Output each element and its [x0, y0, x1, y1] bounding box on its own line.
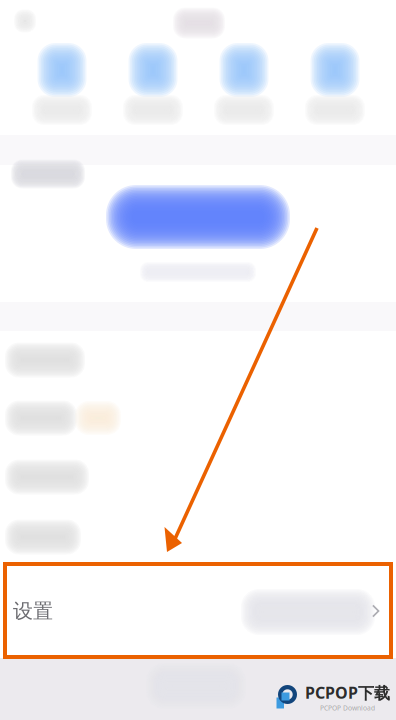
- button[interactable]: [106, 185, 290, 249]
- button[interactable]: [0, 448, 396, 506]
- staticText: PCPOP Download: [320, 703, 375, 712]
- button[interactable]: Quick action: [291, 42, 379, 134]
- button[interactable]: [0, 508, 396, 566]
- button[interactable]: [0, 331, 396, 389]
- button[interactable]: Quick action: [200, 42, 288, 134]
- button[interactable]: Tab: [136, 661, 256, 711]
- staticText: 设置: [13, 598, 53, 624]
- button[interactable]: Quick action: [109, 42, 197, 134]
- button[interactable]: Quick action: [18, 42, 106, 134]
- button[interactable]: [0, 389, 396, 447]
- button[interactable]: Back: [5, 4, 45, 38]
- button[interactable]: 设置: [0, 565, 396, 657]
- staticText: PCPOP下载: [305, 681, 390, 703]
